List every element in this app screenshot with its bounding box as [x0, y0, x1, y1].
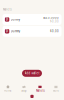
button[interactable]: D	[2, 14, 61, 25]
staticText: D	[6, 29, 8, 33]
staticText: $0.00	[50, 20, 59, 23]
staticText: Dummy	[11, 18, 20, 21]
staticText: Wallets	[35, 89, 44, 92]
staticText: More	[52, 89, 59, 92]
staticText: Wallets	[3, 8, 12, 11]
button[interactable]: Home	[0, 85, 16, 93]
button[interactable]: More	[48, 85, 64, 93]
staticText: Dummy	[11, 29, 20, 33]
button[interactable]: Swap	[16, 85, 32, 93]
button[interactable]: D	[2, 26, 61, 37]
staticText: Add wallet	[24, 71, 39, 75]
staticText: Home	[4, 89, 12, 92]
staticText: Swap	[21, 89, 27, 92]
staticText: SOL 0.0000	[43, 16, 59, 19]
button[interactable]: Add wallet	[22, 70, 42, 77]
staticText: D	[6, 18, 8, 21]
staticText: $0.00	[50, 29, 59, 33]
button[interactable]: Wallets	[32, 85, 48, 93]
